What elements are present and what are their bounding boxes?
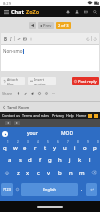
staticText: w	[13, 144, 18, 152]
button[interactable]: Post reply	[72, 77, 99, 85]
button[interactable]: Insert quotes	[28, 77, 56, 85]
staticText: 3	[27, 140, 29, 144]
staticText: your	[27, 130, 38, 137]
button[interactable]: your	[24, 130, 41, 137]
button[interactable]: English	[21, 183, 78, 196]
button[interactable]: f	[35, 153, 45, 166]
button[interactable]: Insert link	[16, 35, 22, 43]
button[interactable]: Enter	[86, 183, 97, 196]
staticText: i	[74, 144, 76, 152]
button[interactable]: Chat	[11, 8, 40, 15]
button[interactable]: 5	[40, 140, 50, 153]
button[interactable]: 6	[50, 140, 60, 153]
button[interactable]: Share on Reddit	[29, 90, 36, 97]
button[interactable]: n	[65, 166, 76, 179]
button[interactable]: Search	[90, 7, 99, 16]
button[interactable]: Insert image	[22, 35, 28, 43]
button[interactable]: s	[15, 153, 25, 166]
button[interactable]: MOD	[58, 130, 77, 137]
button[interactable]: I	[8, 35, 14, 43]
staticText: Help	[66, 113, 74, 118]
staticText: 7	[67, 140, 69, 144]
button[interactable]: Redo	[92, 35, 98, 43]
button[interactable]: m	[76, 166, 87, 179]
button[interactable]: Backspace	[87, 166, 100, 179]
button[interactable]: d	[25, 153, 35, 166]
button[interactable]: Attach files	[1, 77, 25, 85]
staticText: ZoZo	[26, 8, 40, 15]
button[interactable]: 3	[20, 140, 30, 153]
button[interactable]: Undo	[85, 35, 91, 43]
button[interactable]: ?123	[1, 183, 13, 196]
button[interactable]: Help	[65, 113, 75, 118]
staticText: 5	[47, 140, 49, 144]
button[interactable]: 8	[70, 140, 80, 153]
button[interactable]: Tamil Room	[3, 105, 30, 110]
staticText: z	[17, 169, 20, 177]
button[interactable]: Terms and rules	[21, 113, 51, 118]
staticText: B	[4, 36, 7, 42]
staticText: 2	[17, 140, 19, 144]
button[interactable]: h	[55, 153, 65, 166]
button[interactable]: a	[5, 153, 15, 166]
button[interactable]: Account	[72, 7, 81, 16]
button[interactable]: b	[54, 166, 65, 179]
button[interactable]: Share on Pinterest	[36, 90, 43, 97]
button[interactable]: Messages	[81, 7, 90, 16]
staticText: Home	[76, 113, 87, 118]
staticText: Privacy	[52, 113, 64, 118]
button[interactable]: 1	[0, 140, 10, 153]
button[interactable]: x	[23, 166, 33, 179]
button[interactable]: Notifications	[63, 7, 72, 16]
staticText: 4	[37, 140, 39, 144]
button[interactable]: Share on Twitter	[22, 90, 29, 97]
staticText: 2 of 3	[58, 23, 69, 28]
button[interactable]: 4	[30, 140, 40, 153]
button[interactable]: 9	[80, 140, 90, 153]
button[interactable]: Prev	[38, 22, 54, 29]
button[interactable]: Contact us	[1, 113, 21, 118]
staticText: b	[58, 169, 62, 177]
button[interactable]: v	[43, 166, 54, 179]
button[interactable]: Menu	[2, 7, 11, 16]
button[interactable]: Forward	[14, 121, 20, 125]
button[interactable]: More options	[28, 35, 34, 43]
staticText: o	[83, 144, 87, 152]
staticText: d	[28, 156, 32, 164]
button[interactable]: 2	[10, 140, 20, 153]
button[interactable]: j	[65, 153, 75, 166]
button[interactable]: z	[13, 166, 23, 179]
button[interactable]: More share options	[50, 90, 57, 97]
button[interactable]: Privacy	[51, 113, 65, 118]
button[interactable]: 7	[60, 140, 70, 153]
staticText: 6	[57, 140, 59, 144]
button[interactable]: g	[45, 153, 55, 166]
button[interactable]: k	[75, 153, 85, 166]
button[interactable]: First page	[29, 22, 36, 29]
button[interactable]: Share on Facebook	[15, 90, 22, 97]
button[interactable]: l	[85, 153, 95, 166]
staticText: f	[39, 156, 42, 164]
button[interactable]: Back	[5, 121, 11, 125]
button[interactable]: 2 of 3	[56, 22, 71, 29]
button[interactable]: Voice input	[2, 131, 8, 137]
button[interactable]: B	[2, 35, 8, 43]
staticText: Post reply	[78, 79, 97, 84]
button[interactable]: c	[33, 166, 43, 179]
button[interactable]: Emoji	[13, 183, 21, 196]
button[interactable]: 0	[90, 140, 100, 153]
staticText: l	[89, 156, 91, 164]
staticText: Terms and rules	[22, 113, 50, 118]
button[interactable]: Non-smo	[1, 45, 99, 71]
staticText: p	[93, 144, 97, 152]
button[interactable]: Share by email	[43, 90, 50, 97]
button[interactable]: Home	[75, 113, 88, 118]
button[interactable]: Period	[78, 183, 86, 196]
staticText: I	[10, 36, 12, 42]
staticText: Share	[2, 91, 13, 96]
staticText: Prev	[43, 23, 52, 28]
button[interactable]: Shift	[0, 166, 13, 179]
staticText: 0	[97, 140, 99, 144]
